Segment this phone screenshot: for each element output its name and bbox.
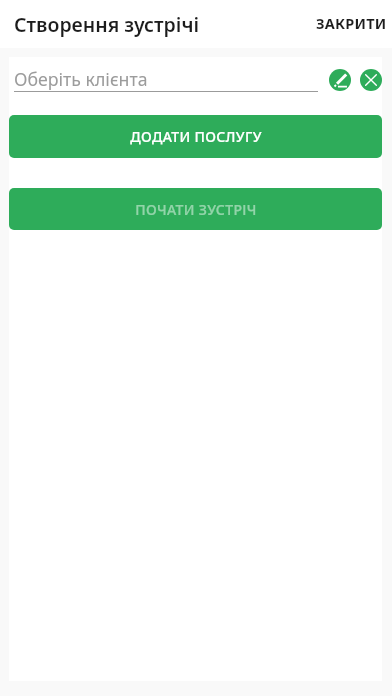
button[interactable]: Edit client xyxy=(329,69,351,91)
button[interactable]: ЗАКРИТИ xyxy=(306,4,392,44)
button[interactable]: Clear client xyxy=(360,69,382,91)
button[interactable]: ДОДАТИ ПОСЛУГУ xyxy=(9,115,382,158)
staticText: ДОДАТИ ПОСЛУГУ xyxy=(130,127,262,146)
staticText: Оберіть клієнта xyxy=(14,67,148,91)
staticText: Створення зустрічі xyxy=(14,11,200,38)
button[interactable]: ПОЧАТИ ЗУСТРІЧ xyxy=(9,188,382,230)
staticText: ПОЧАТИ ЗУСТРІЧ xyxy=(135,200,257,219)
staticText: ЗАКРИТИ xyxy=(316,13,387,33)
